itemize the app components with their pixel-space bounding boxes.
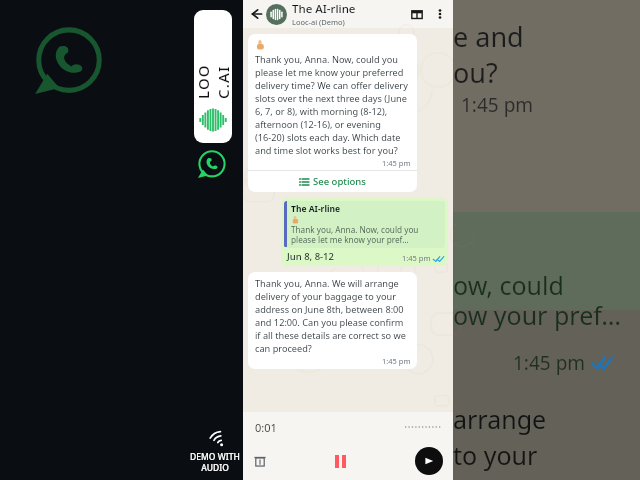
staticText: The AI-rline <box>291 203 341 215</box>
staticText: Thank you, Anna. Now, could you please l… <box>255 53 411 157</box>
staticText: 0:01 <box>255 420 277 435</box>
button[interactable]: Contact avatar <box>266 4 287 25</box>
button[interactable]: Delete recording <box>253 454 267 468</box>
staticText: Thank you, Anna. Now, could you please l… <box>291 224 442 246</box>
button[interactable]: See options <box>248 171 417 192</box>
staticText: to your <box>453 438 538 472</box>
staticText: LOOC.AI <box>194 61 232 99</box>
button[interactable]: Business profile <box>410 7 424 21</box>
staticText: DEMO WITH AUDIO <box>190 451 240 473</box>
staticText: arrange <box>453 402 547 436</box>
staticText: Jun 8, 8-12 <box>287 250 334 263</box>
staticText: 1:45 pm <box>513 350 586 376</box>
staticText: 1:45 pm <box>382 356 411 366</box>
button[interactable]: Send <box>415 447 443 475</box>
staticText: 1:45 pm <box>382 158 411 168</box>
button[interactable]: The AI-rline <box>292 1 410 27</box>
staticText: ow, could <box>453 268 564 302</box>
button[interactable]: Back <box>249 7 263 21</box>
staticText: Thank you, Anna. We will arrange deliver… <box>255 277 411 355</box>
staticText: The AI-rline <box>292 1 356 17</box>
button[interactable]: LOOC.AI <box>194 10 232 143</box>
staticText: 1:45 pm <box>402 253 431 263</box>
staticText: Looc-ai (Demo) <box>292 17 345 27</box>
button[interactable]: Pause recording <box>331 451 350 472</box>
staticText: e and <box>453 18 524 55</box>
staticText: ow your pref… <box>453 298 622 332</box>
staticText: 1:45 pm <box>461 92 534 118</box>
staticText: See options <box>313 175 366 188</box>
button[interactable]: More options <box>433 7 447 21</box>
staticText: ou? <box>453 54 498 91</box>
